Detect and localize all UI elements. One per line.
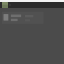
button[interactable] [2,2,8,8]
